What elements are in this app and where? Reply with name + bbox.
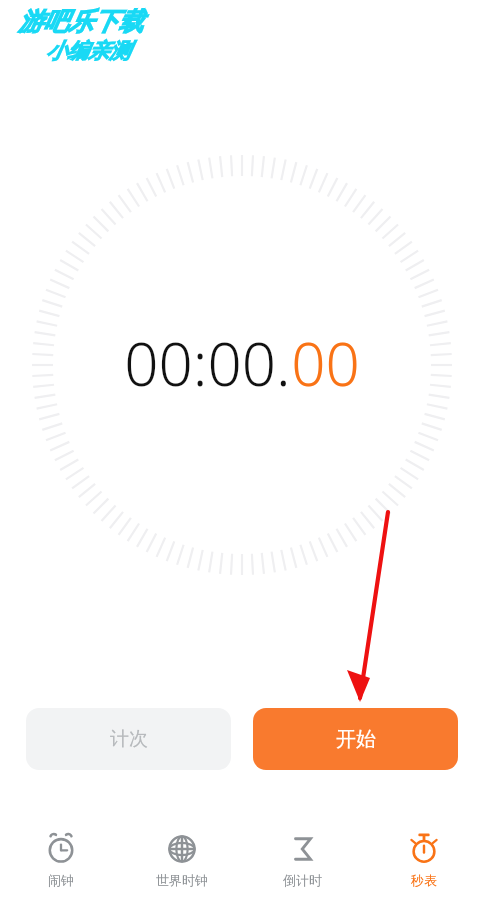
button[interactable]: 开始 <box>253 708 458 770</box>
staticText: 00 <box>291 322 360 404</box>
staticText: 00:00. <box>124 322 291 404</box>
staticText: 开始 <box>336 727 376 752</box>
staticText: 游吧乐下载 <box>18 6 143 37</box>
button[interactable]: 倒计时 <box>242 820 363 899</box>
button[interactable]: 计次 <box>26 708 231 770</box>
staticText: 闹钟 <box>48 872 74 888</box>
staticText: 倒计时 <box>283 872 322 888</box>
staticText: 小编亲测 <box>46 38 130 64</box>
staticText: 计次 <box>110 727 148 751</box>
button[interactable]: 世界时钟 <box>121 820 242 899</box>
button[interactable]: 闹钟 <box>0 820 121 899</box>
staticText: 世界时钟 <box>156 872 208 888</box>
staticText: 秒表 <box>411 872 437 888</box>
button[interactable]: 秒表 <box>363 820 484 899</box>
